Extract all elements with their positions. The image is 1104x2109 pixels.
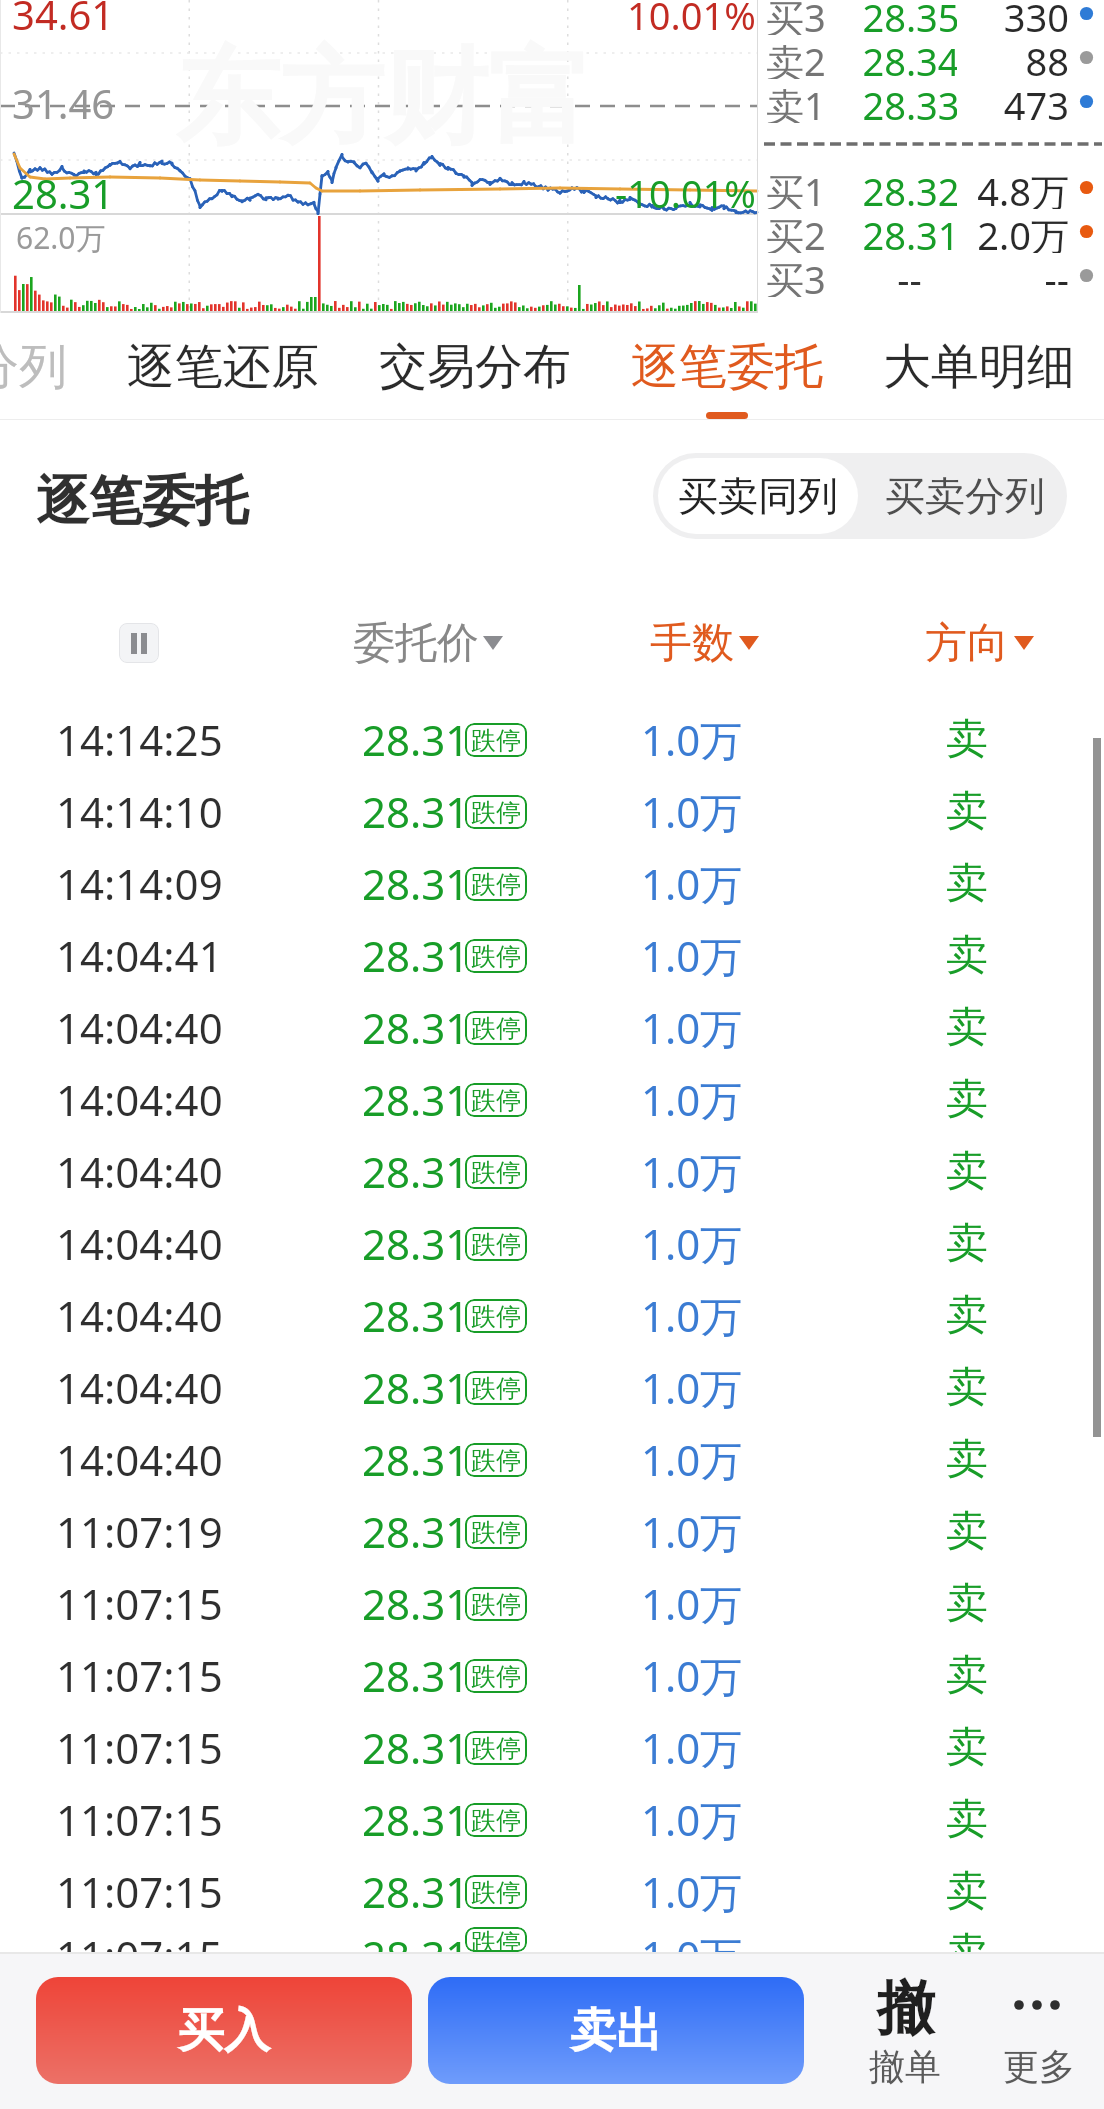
staticText: 28.31 <box>362 1927 470 1952</box>
button[interactable]: 14:04:40 <box>0 1351 1104 1423</box>
staticText: 方向 <box>925 617 1009 670</box>
button[interactable]: 11:07:15 <box>0 1855 1104 1927</box>
button[interactable]: 方向 <box>829 583 1104 703</box>
button[interactable]: 买卖同列 <box>658 458 858 534</box>
button[interactable]: 11:07:15 <box>0 1639 1104 1711</box>
staticText: 买卖分列 <box>0 337 67 397</box>
staticText: 1.0万 <box>641 1503 743 1560</box>
staticText: 跌停 <box>471 1517 521 1548</box>
staticText: 卖 <box>946 1649 988 1702</box>
staticText: 28.31 <box>362 855 470 912</box>
staticText: 1.0万 <box>641 1215 743 1272</box>
staticText: 28.31 <box>362 1575 470 1632</box>
button[interactable]: 逐笔还原 <box>97 313 349 420</box>
button[interactable]: 买卖分列 <box>0 313 97 420</box>
button[interactable]: 14:04:40 <box>0 1423 1104 1495</box>
button[interactable]: 11:07:15 <box>0 1711 1104 1783</box>
button[interactable]: 11:07:19 <box>0 1495 1104 1567</box>
button[interactable]: 买卖分列 <box>863 453 1067 539</box>
button[interactable]: 手数 <box>554 583 829 703</box>
button[interactable]: 11:07:15 <box>0 1783 1104 1855</box>
staticText: 28.31 <box>362 1719 470 1776</box>
staticText: 1.0万 <box>641 1575 743 1632</box>
staticText: 逐笔委托 <box>36 468 248 535</box>
staticText: 卖2 <box>766 35 826 79</box>
button[interactable]: 买3 <box>758 253 1104 297</box>
button[interactable]: 14:14:10 <box>0 775 1104 847</box>
staticText: 28.31 <box>362 1647 470 1704</box>
staticText: 大单明细 <box>883 337 1075 397</box>
staticText: 11:07:15 <box>56 1791 223 1848</box>
button[interactable]: 14:04:40 <box>0 1135 1104 1207</box>
staticText: 28.31 <box>362 1215 470 1272</box>
staticText: 卖 <box>946 1793 988 1846</box>
staticText: 1.0万 <box>641 855 743 912</box>
staticText: 1.0万 <box>641 927 743 984</box>
staticText: 跌停 <box>471 1229 521 1260</box>
staticText: 1.0万 <box>641 1287 743 1344</box>
staticText: 14:14:25 <box>56 711 223 768</box>
staticText: 31.46 <box>12 76 115 130</box>
button[interactable]: 买3 <box>758 0 1104 35</box>
staticText: 28.31 <box>362 783 470 840</box>
button[interactable]: 14:04:40 <box>0 1279 1104 1351</box>
staticText: 跌停 <box>471 869 521 900</box>
staticText: 14:04:40 <box>56 1143 223 1200</box>
button[interactable]: 大单明细 <box>853 313 1104 420</box>
staticText: 跌停 <box>471 797 521 828</box>
button[interactable]: 14:04:40 <box>0 991 1104 1063</box>
button[interactable]: 11:07:15 <box>0 1567 1104 1639</box>
staticText: 14:04:40 <box>56 1431 223 1488</box>
staticText: 88 <box>957 35 1069 79</box>
staticText: 28.31 <box>362 1791 470 1848</box>
button[interactable]: 委托价 <box>278 583 554 703</box>
staticText: 卖1 <box>766 79 826 123</box>
staticText: -10.01% <box>615 167 756 219</box>
button[interactable]: 买1 <box>758 165 1104 209</box>
staticText: 14:04:40 <box>56 1287 223 1344</box>
staticText: 东方财富 <box>176 33 592 164</box>
staticText: 卖 <box>946 1577 988 1630</box>
button[interactable]: 14:04:40 <box>0 1063 1104 1135</box>
button[interactable]: 14:04:40 <box>0 1207 1104 1279</box>
staticText: 2.0万 <box>957 209 1069 253</box>
staticText: 逐笔委托 <box>631 337 823 397</box>
staticText: 28.31 <box>362 1359 470 1416</box>
staticText: 1.0万 <box>641 1359 743 1416</box>
staticText: 跌停 <box>471 1805 521 1836</box>
button[interactable]: More options <box>949 1952 1104 2109</box>
staticText: 买卖分列 <box>885 471 1045 521</box>
button[interactable]: 14:14:09 <box>0 847 1104 919</box>
staticText: 11:07:15 <box>56 1647 223 1704</box>
staticText: 逐笔还原 <box>127 337 319 397</box>
button[interactable]: 撤 <box>804 1952 949 2109</box>
staticText: 1.0万 <box>641 1431 743 1488</box>
button[interactable]: Pause auto refresh <box>119 623 159 663</box>
staticText: 跌停 <box>471 1301 521 1332</box>
button[interactable]: 逐笔委托 <box>601 313 853 420</box>
staticText: 1.0万 <box>641 1719 743 1776</box>
staticText: 跌停 <box>471 1373 521 1404</box>
staticText: 1.0万 <box>641 1647 743 1704</box>
staticText: 14:04:40 <box>56 1071 223 1128</box>
button[interactable]: 交易分布 <box>349 313 601 420</box>
staticText: 11:07:15 <box>56 1863 223 1920</box>
button[interactable]: 11:07:15 <box>0 1927 1104 1952</box>
staticText: 跌停 <box>471 1085 521 1116</box>
staticText: 28.31 <box>362 999 470 1056</box>
staticText: 卖 <box>946 857 988 910</box>
staticText: 撤单 <box>869 2044 941 2089</box>
button[interactable]: 买2 <box>758 209 1104 253</box>
staticText: 14:04:40 <box>56 999 223 1056</box>
button[interactable]: 14:14:25 <box>0 703 1104 775</box>
button[interactable]: 卖1 <box>758 79 1104 123</box>
button[interactable]: 卖出 <box>428 1977 804 2084</box>
button[interactable]: 卖2 <box>758 35 1104 79</box>
staticText: 14:04:40 <box>56 1215 223 1272</box>
staticText: 28.31 <box>362 1071 470 1128</box>
button[interactable]: 14:04:41 <box>0 919 1104 991</box>
staticText: 28.31 <box>362 1863 470 1920</box>
staticText: 卖出 <box>570 2002 662 2060</box>
button[interactable]: 买入 <box>36 1977 412 2084</box>
staticText: 28.31 <box>862 209 957 253</box>
